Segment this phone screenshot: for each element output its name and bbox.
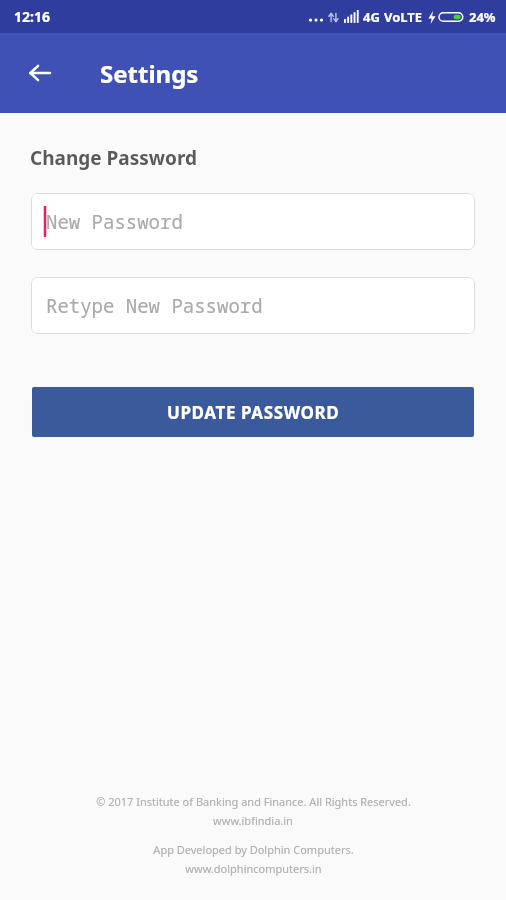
staticText: New Password [46,209,183,235]
button[interactable]: Back [18,51,62,95]
staticText: 24% [469,8,496,26]
button[interactable]: Retype New Password [31,277,475,334]
staticText: www.ibfindia.in [213,813,293,828]
staticText: Retype New Password [46,293,263,319]
staticText: 12:16 [14,7,50,26]
staticText: App Developed by Dolphin Computers. [153,842,354,857]
staticText: VoLTE [384,8,423,26]
staticText: 4G [363,8,380,26]
button[interactable]: New Password [31,193,475,250]
staticText: UPDATE PASSWORD [167,401,340,424]
staticText: www.dolphincomputers.in [185,861,322,876]
staticText: © 2017 Institute of Banking and Finance.… [96,794,411,809]
staticText: Settings [100,57,199,90]
staticText: Change Password [30,145,198,171]
button[interactable]: UPDATE PASSWORD [32,387,474,437]
